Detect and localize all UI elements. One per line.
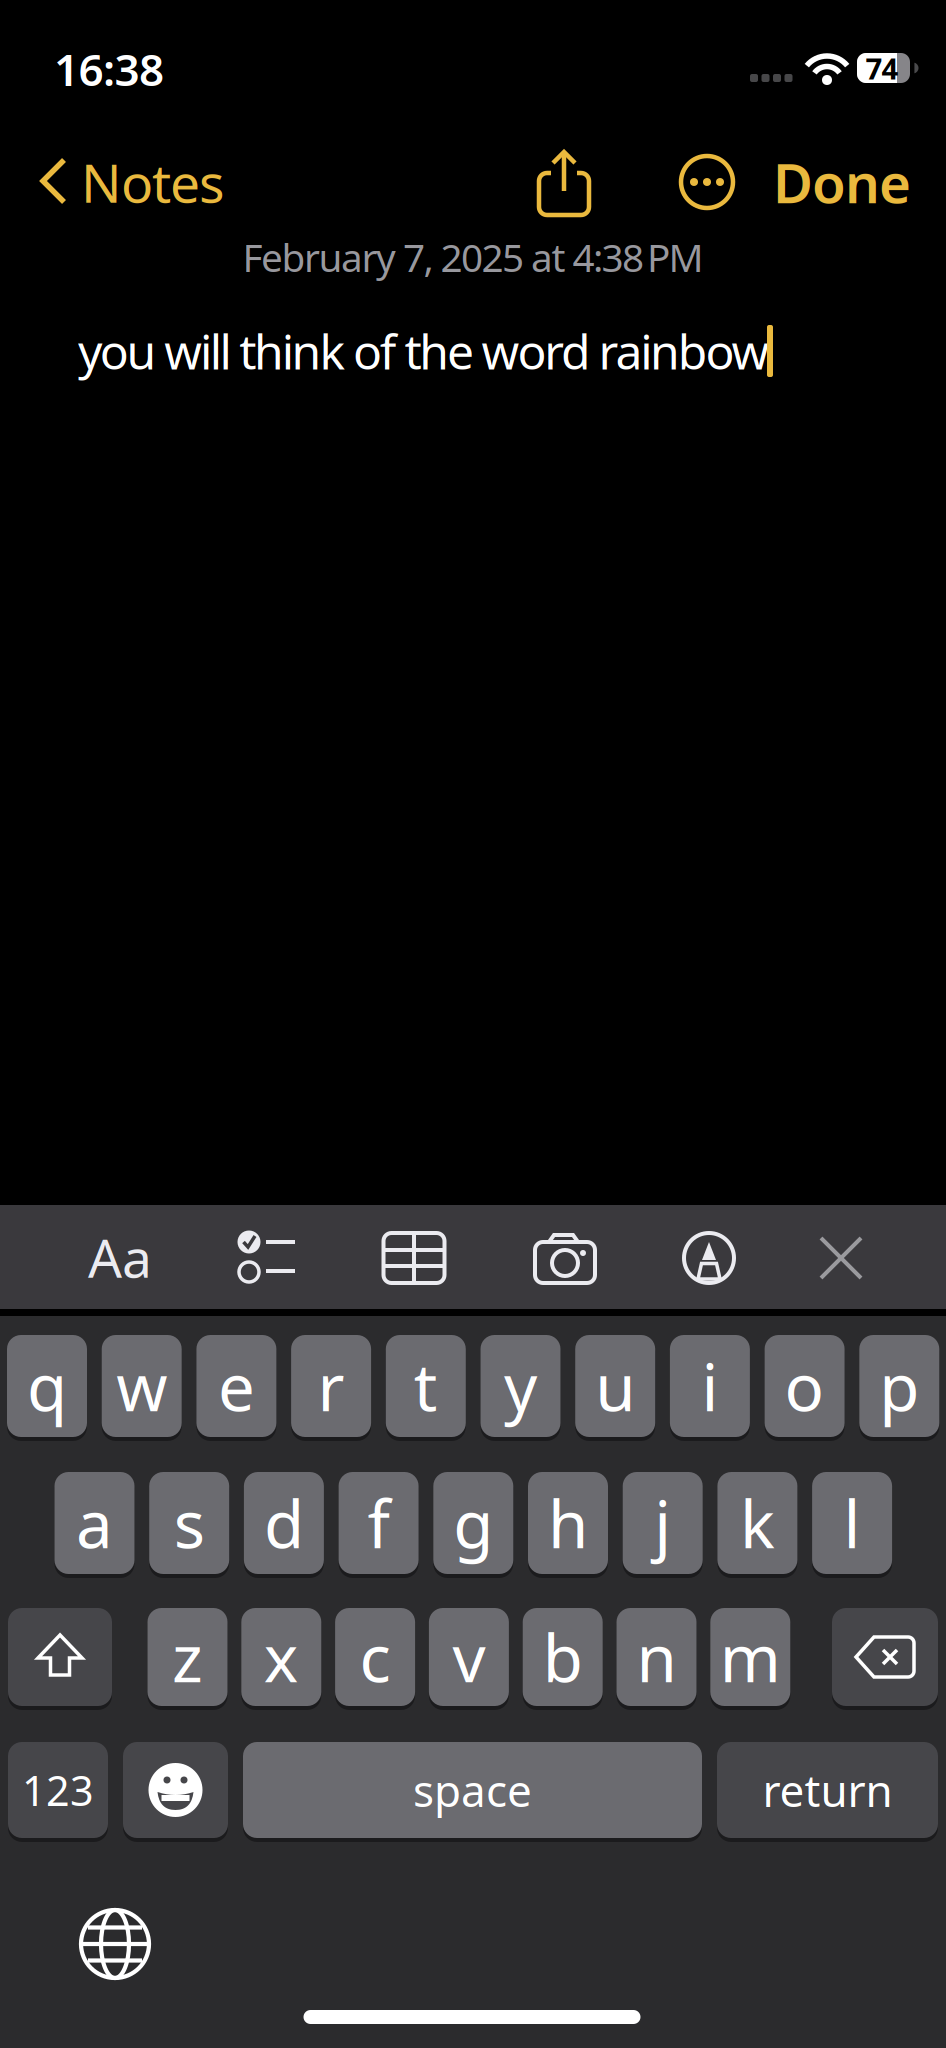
button[interactable]: w xyxy=(102,1335,182,1439)
staticText: 123 xyxy=(22,1763,94,1817)
button[interactable]: v xyxy=(429,1608,509,1708)
staticText: y xyxy=(504,1343,537,1429)
button[interactable]: Delete xyxy=(832,1608,938,1708)
button[interactable]: Markup xyxy=(673,1222,745,1294)
button[interactable]: i xyxy=(670,1335,750,1439)
button[interactable]: s xyxy=(149,1472,229,1576)
button[interactable]: More xyxy=(679,154,735,210)
staticText: 16:38 xyxy=(54,40,164,98)
staticText: q xyxy=(27,1343,67,1429)
button[interactable]: x xyxy=(241,1608,321,1708)
staticText: r xyxy=(318,1343,345,1429)
staticText: k xyxy=(740,1480,775,1566)
button[interactable]: Format xyxy=(75,1217,165,1297)
staticText: February 7, 2025 at 4:38 PM xyxy=(242,231,703,283)
button[interactable]: Emoji xyxy=(123,1742,228,1840)
staticText: p xyxy=(879,1343,919,1429)
button[interactable]: o xyxy=(765,1335,845,1439)
button[interactable]: l xyxy=(812,1472,892,1576)
staticText: i xyxy=(701,1343,718,1429)
button[interactable]: j xyxy=(623,1472,703,1576)
button[interactable]: return xyxy=(717,1742,938,1840)
staticText: j xyxy=(654,1480,671,1566)
staticText: Aa xyxy=(88,1222,152,1292)
staticText: f xyxy=(368,1480,390,1566)
button[interactable]: Shift xyxy=(8,1608,112,1708)
button[interactable]: h xyxy=(528,1472,608,1576)
button[interactable]: t xyxy=(386,1335,466,1439)
button[interactable]: e xyxy=(196,1335,276,1439)
button[interactable]: Close xyxy=(811,1228,871,1288)
staticText: n xyxy=(636,1614,676,1700)
button[interactable]: k xyxy=(717,1472,797,1576)
staticText: c xyxy=(360,1614,391,1700)
staticText: u xyxy=(595,1343,635,1429)
staticText: l xyxy=(844,1480,861,1566)
staticText: t xyxy=(414,1343,438,1429)
button[interactable]: g xyxy=(433,1472,513,1576)
staticText: w xyxy=(116,1343,167,1429)
staticText: m xyxy=(720,1614,781,1700)
button[interactable]: q xyxy=(7,1335,87,1439)
button[interactable]: Done xyxy=(773,146,911,218)
staticText: a xyxy=(76,1480,113,1566)
button[interactable]: Share xyxy=(534,149,594,219)
button[interactable]: p xyxy=(859,1335,939,1439)
button[interactable]: Next keyboard xyxy=(78,1907,152,1981)
staticText: x xyxy=(264,1614,299,1700)
staticText: o xyxy=(785,1343,825,1429)
button[interactable]: Checklist xyxy=(229,1217,309,1297)
button[interactable]: a xyxy=(54,1472,134,1576)
staticText: you will think of the word rainbow xyxy=(78,319,769,383)
staticText: Notes xyxy=(81,147,225,217)
staticText: z xyxy=(172,1614,203,1700)
button[interactable]: d xyxy=(244,1472,324,1576)
button[interactable]: Table xyxy=(374,1218,454,1298)
staticText: b xyxy=(543,1614,583,1700)
staticText: e xyxy=(218,1343,255,1429)
button[interactable]: space xyxy=(243,1742,702,1840)
button[interactable]: Camera xyxy=(525,1218,605,1298)
button[interactable]: b xyxy=(523,1608,603,1708)
staticText: space xyxy=(413,1761,532,1819)
staticText: return xyxy=(762,1761,892,1819)
button[interactable]: z xyxy=(147,1608,227,1708)
button[interactable]: r xyxy=(291,1335,371,1439)
staticText: Done xyxy=(773,146,911,218)
button[interactable]: y xyxy=(480,1335,560,1439)
staticText: g xyxy=(453,1480,493,1566)
staticText: s xyxy=(174,1480,205,1566)
button[interactable]: m xyxy=(710,1608,790,1708)
button[interactable]: Back xyxy=(41,152,225,212)
staticText: h xyxy=(548,1480,588,1566)
button[interactable]: u xyxy=(575,1335,655,1439)
staticText: v xyxy=(452,1614,485,1700)
button[interactable]: c xyxy=(335,1608,415,1708)
staticText: 74 xyxy=(865,48,898,87)
button[interactable]: f xyxy=(339,1472,419,1576)
button[interactable]: 123 xyxy=(8,1742,108,1840)
staticText: d xyxy=(264,1480,304,1566)
button[interactable]: n xyxy=(616,1608,696,1708)
